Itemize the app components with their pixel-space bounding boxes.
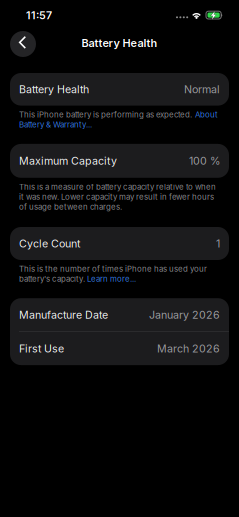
staticText: of usage between charges. <box>19 202 122 211</box>
button[interactable]: Back <box>10 31 36 57</box>
staticText: About <box>195 110 218 119</box>
staticText: 100 % <box>189 154 220 167</box>
staticText: March 2026 <box>157 342 220 355</box>
button[interactable]: Cycle Count <box>10 227 229 260</box>
staticText: Battery Health <box>81 36 157 50</box>
staticText: Battery Health <box>19 83 89 96</box>
staticText: battery's capacity. <box>19 274 85 284</box>
staticText: This is a measure of battery capacity re… <box>19 182 216 191</box>
staticText: 11:57 <box>26 9 52 22</box>
staticText: January 2026 <box>149 308 220 321</box>
button[interactable]: Manufacture Date <box>10 298 229 331</box>
staticText: Cycle Count <box>19 237 80 250</box>
staticText: Battery & Warranty... <box>19 120 92 129</box>
staticText: it was new. Lower capacity may result in… <box>19 192 214 201</box>
staticText: Manufacture Date <box>19 308 108 321</box>
staticText: This iPhone battery is performing as exp… <box>19 110 192 119</box>
staticText: Normal <box>184 83 220 96</box>
staticText: First Use <box>19 342 64 355</box>
staticText: Maximum Capacity <box>19 154 117 167</box>
button[interactable]: First Use <box>10 332 229 365</box>
button[interactable]: Maximum Capacity <box>10 144 229 178</box>
staticText: This is the number of times iPhone has u… <box>19 264 207 274</box>
button[interactable]: Battery Health <box>10 73 229 106</box>
staticText: Learn more... <box>87 274 136 284</box>
staticText: 1 <box>216 237 220 250</box>
